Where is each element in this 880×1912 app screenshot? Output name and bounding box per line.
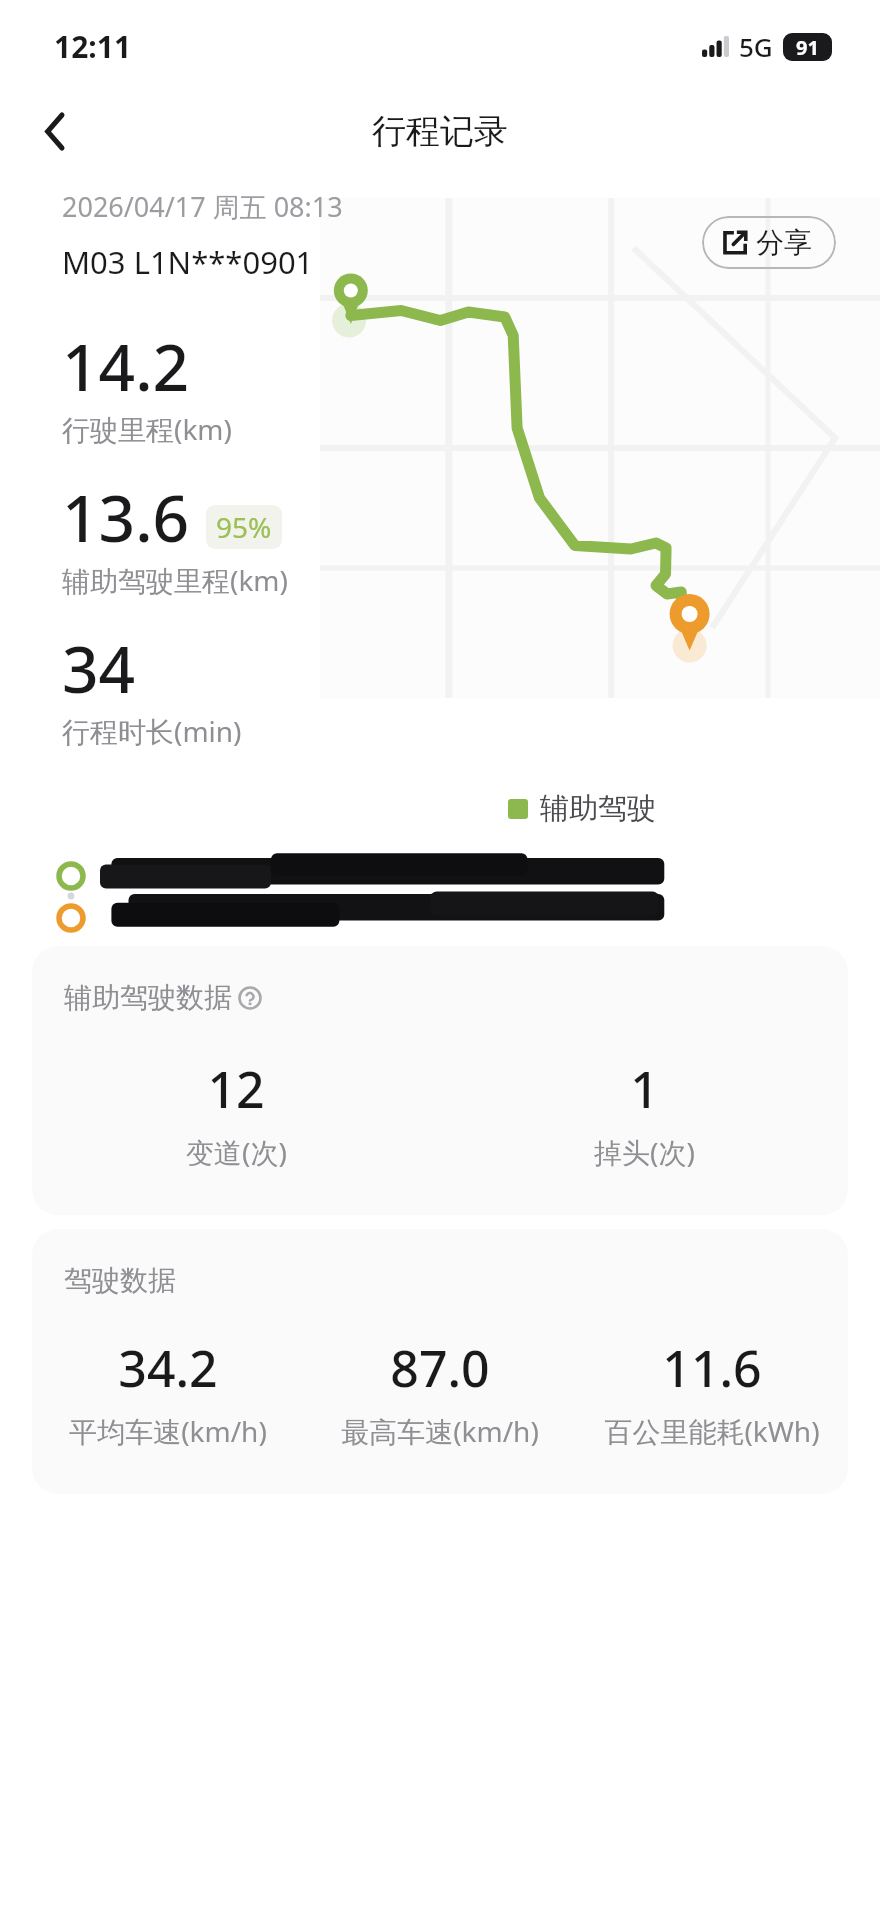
staticText: 34.2 (118, 1334, 218, 1402)
staticText: 95% (216, 508, 272, 546)
staticText: 14.2 (62, 323, 190, 410)
staticText: 1 (630, 1055, 659, 1123)
staticText: 变道(次) (186, 1133, 287, 1171)
staticText: 辅助驾驶里程(km) (62, 561, 288, 599)
staticText: 百公里能耗(kWh) (604, 1412, 820, 1450)
staticText: 12:11 (54, 26, 132, 67)
staticText: 13.6 (62, 474, 190, 561)
staticText: 91 (796, 34, 819, 61)
staticText: 行驶里程(km) (62, 410, 232, 448)
staticText: 2026/04/17 周五 08:13 (62, 188, 343, 225)
button[interactable]: Back (32, 107, 80, 155)
staticText: 平均车速(km/h) (69, 1412, 267, 1450)
staticText: 34 (62, 625, 136, 712)
staticText: 辅助驾驶数据 (64, 980, 232, 1015)
staticText: 掉头(次) (594, 1133, 695, 1171)
button[interactable]: 辅助驾驶数据 (32, 946, 848, 1215)
staticText: 行程记录 (372, 110, 508, 153)
staticText: 11.6 (662, 1334, 762, 1402)
staticText: M03 L1N***0901 (62, 241, 314, 283)
staticText: 最高车速(km/h) (341, 1412, 539, 1450)
staticText: 12 (207, 1055, 265, 1123)
staticText: 87.0 (390, 1334, 490, 1402)
button[interactable]: 驾驶数据 (32, 1229, 848, 1494)
staticText: 行程时长(min) (62, 712, 242, 750)
staticText: 5G (739, 29, 773, 64)
button[interactable]: 分享 (702, 216, 836, 269)
staticText: 驾驶数据 (64, 1263, 176, 1298)
staticText: 辅助驾驶 (540, 790, 656, 827)
staticText: 分享 (756, 225, 812, 260)
